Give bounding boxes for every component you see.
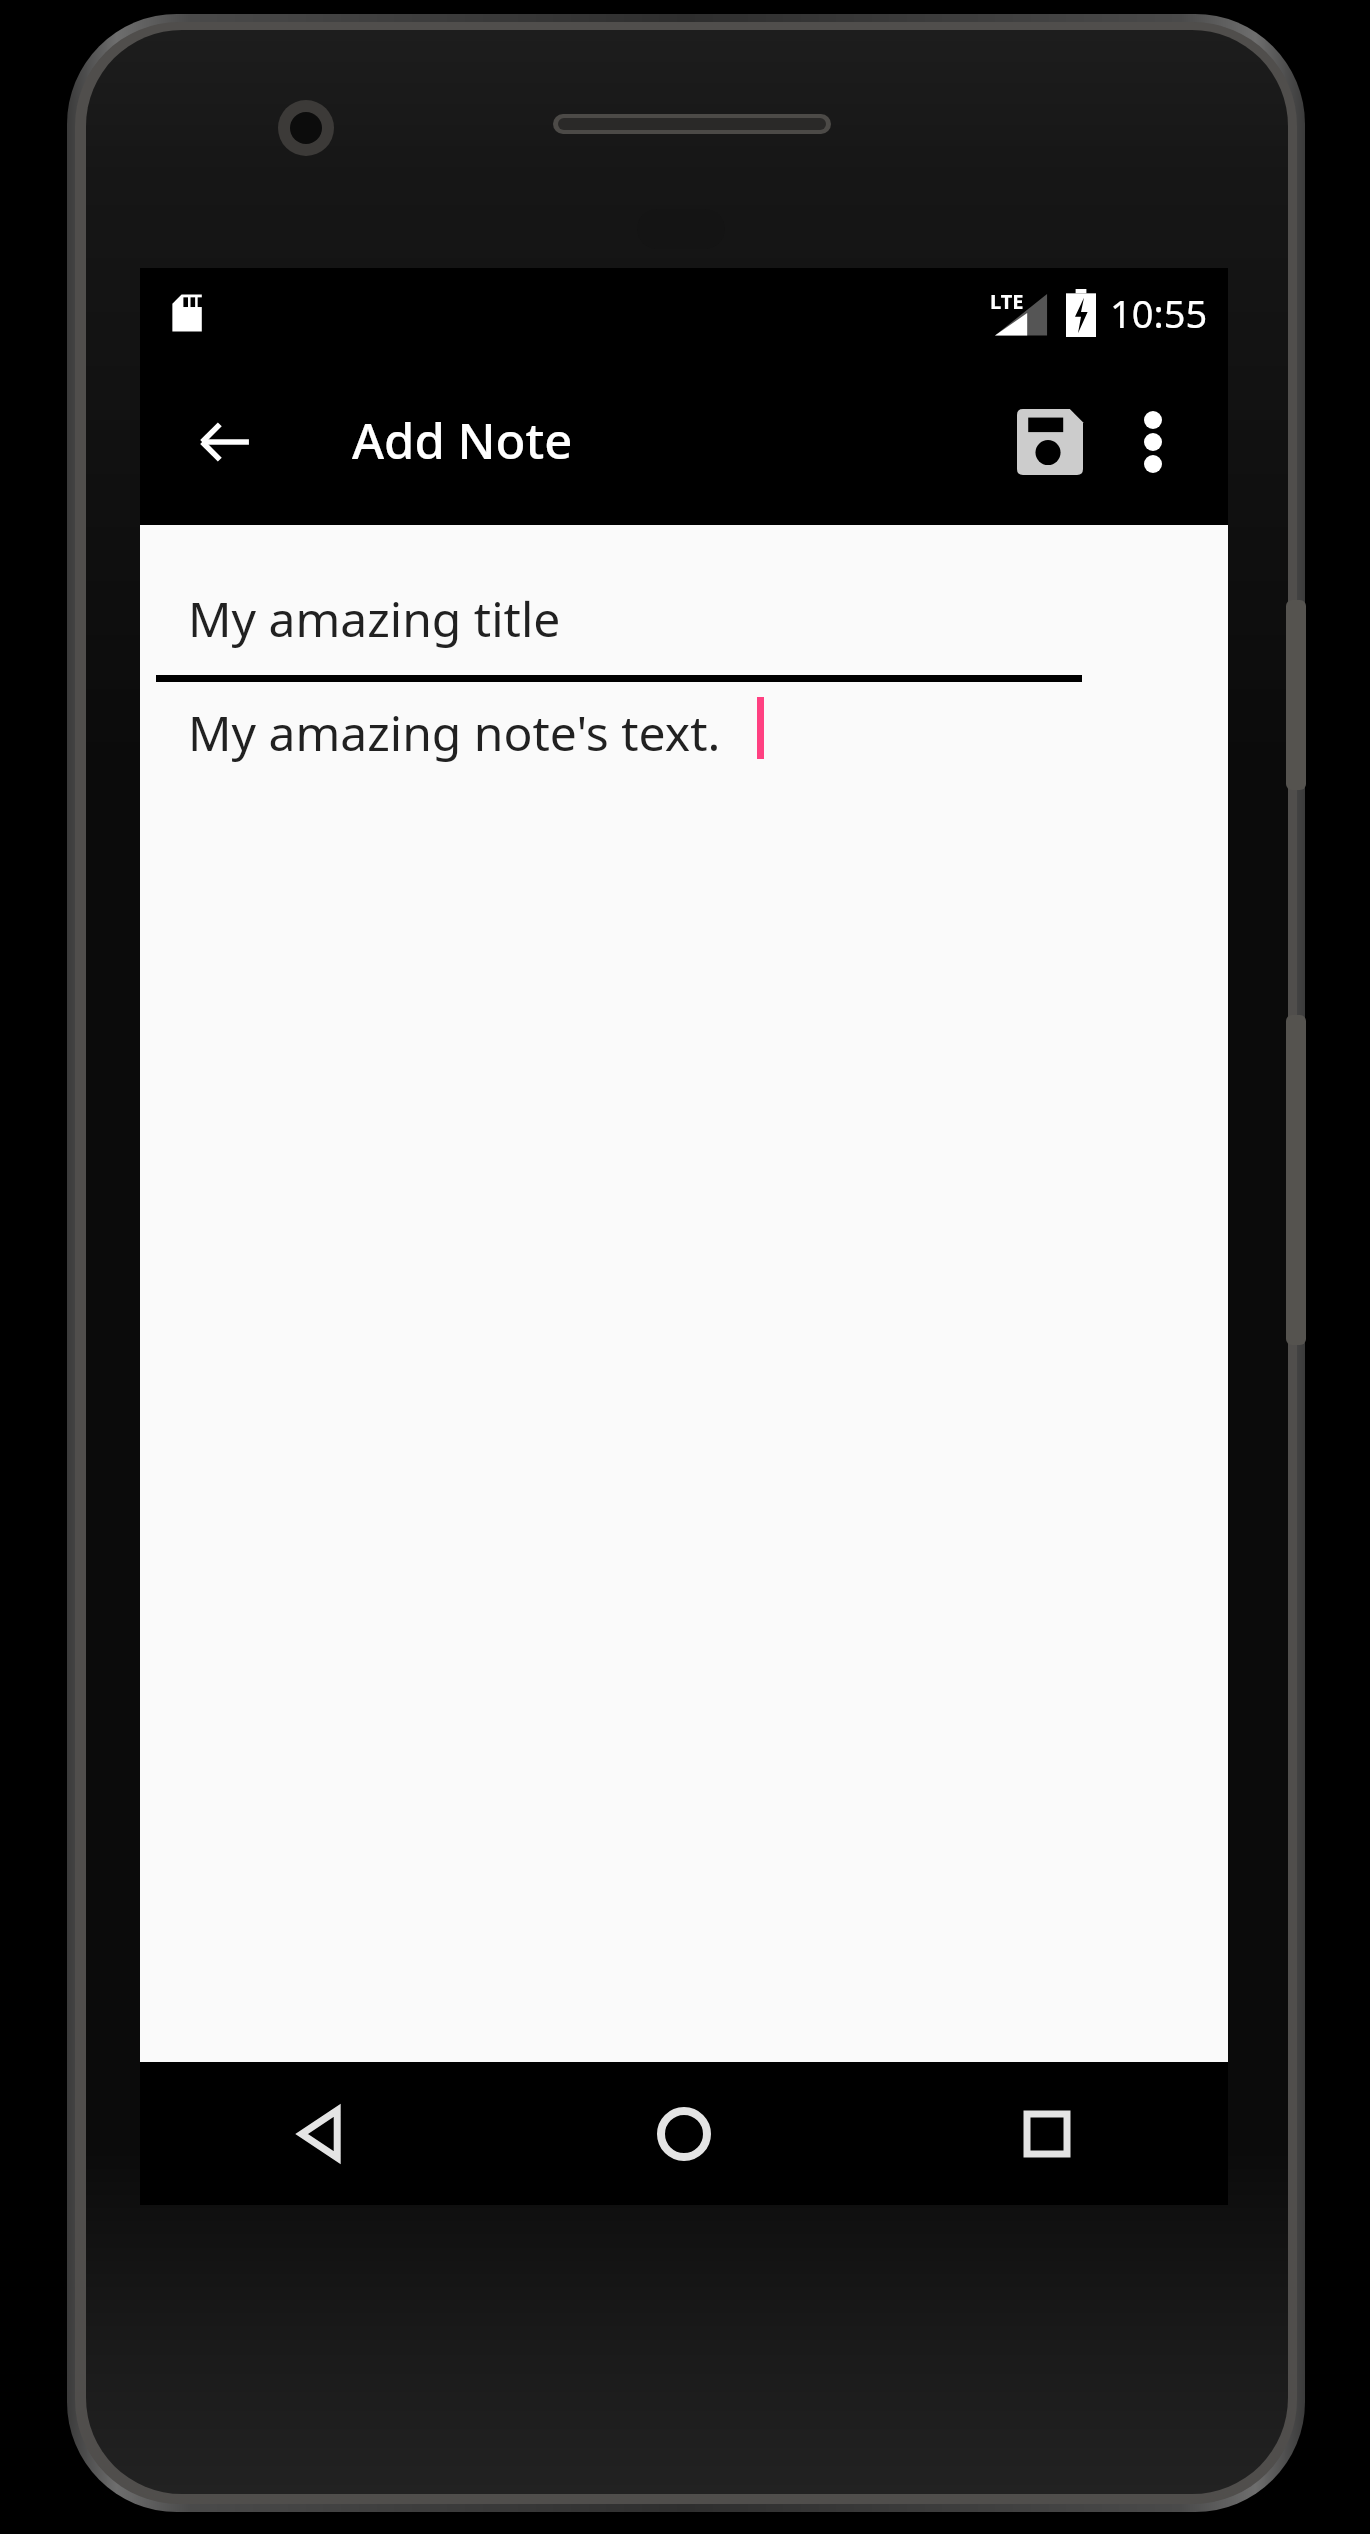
button[interactable]: Save — [1000, 392, 1100, 492]
button[interactable]: My amazing note's text. — [140, 682, 1228, 778]
button[interactable]: My amazing title — [140, 565, 1228, 675]
button[interactable]: Recent apps — [865, 2062, 1228, 2205]
staticText: 10:55 — [1110, 287, 1208, 339]
button[interactable]: Home — [502, 2062, 865, 2205]
button[interactable]: Back — [140, 2062, 502, 2205]
staticText: My amazing note's text. — [188, 700, 721, 765]
staticText: Add Note — [352, 407, 573, 474]
staticText: My amazing title — [188, 586, 561, 651]
staticText: LTE — [990, 288, 1024, 315]
button[interactable]: More options — [1105, 394, 1201, 490]
button[interactable]: Back — [177, 394, 273, 490]
